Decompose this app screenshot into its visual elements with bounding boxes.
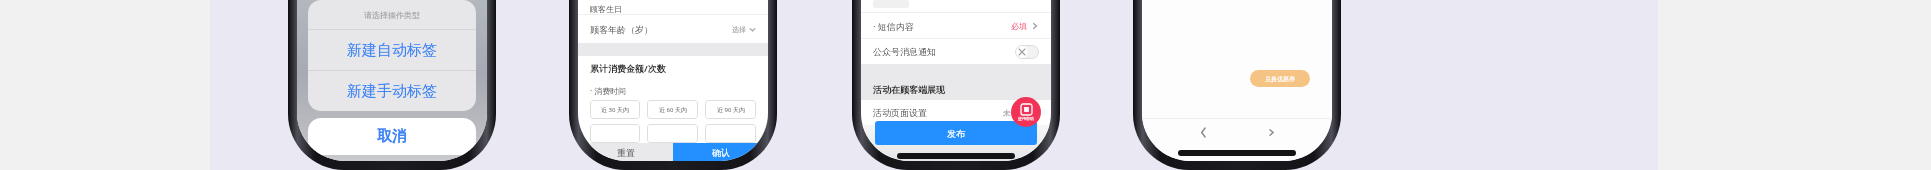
button[interactable]: 近 30 天内 [590, 100, 640, 119]
staticText: 累计消费金额/次数 [590, 62, 666, 74]
staticText: 兑换优惠券 [1265, 75, 1295, 83]
button[interactable]: 确认 [673, 143, 768, 161]
staticText: 新建手动标签 [347, 82, 437, 101]
staticText: 选择 [732, 25, 746, 34]
staticText: 发布 [947, 128, 965, 139]
staticText: 公众号消息通知 [873, 46, 936, 57]
staticText: 重置 [617, 147, 635, 158]
button[interactable]: · 短信内容 [873, 13, 1039, 38]
staticText: 新建自动标签 [347, 41, 437, 60]
button[interactable]: 顾客年龄（岁） [590, 15, 756, 43]
staticText: 必填 [1011, 21, 1027, 31]
button[interactable] [705, 124, 756, 143]
button[interactable]: 新建自动标签 [308, 30, 476, 70]
button[interactable]: 取消 [308, 118, 476, 155]
button[interactable]: 发布 [875, 121, 1037, 145]
staticText: 确认 [712, 147, 730, 158]
staticText: 顾客生日 [590, 4, 622, 14]
button[interactable]: 更多操作 [1011, 97, 1041, 127]
staticText: · 消费时间 [590, 85, 627, 96]
button[interactable]: 近 90 天内 [705, 100, 756, 119]
staticText: · 短信内容 [873, 20, 914, 32]
staticText: 近 60 天内 [659, 106, 687, 114]
staticText: 活动在顾客端展现 [873, 84, 945, 95]
button[interactable]: 近 60 天内 [647, 100, 698, 119]
button[interactable] [590, 124, 640, 143]
button[interactable]: 重置 [578, 143, 673, 161]
button[interactable]: 活动页面设置 [873, 100, 1039, 125]
staticText: 使用帮助 [1018, 116, 1034, 121]
staticText: 请选择操作类型 [364, 10, 420, 20]
button[interactable]: 上一页 [1192, 121, 1214, 143]
staticText: 近 30 天内 [601, 106, 629, 114]
staticText: 活动页面设置 [873, 107, 927, 118]
staticText: 取消 [377, 127, 407, 146]
button[interactable]: 新建手动标签 [308, 71, 476, 111]
staticText: 未设置 [1003, 108, 1027, 118]
button[interactable]: 兑换优惠券 [1250, 70, 1310, 87]
button[interactable]: 公众号消息通知开关 [1015, 45, 1039, 59]
staticText: 近 90 天内 [717, 106, 745, 114]
button[interactable]: 下一页 [1260, 121, 1282, 143]
staticText: 顾客年龄（岁） [590, 24, 653, 35]
button[interactable] [647, 124, 698, 143]
